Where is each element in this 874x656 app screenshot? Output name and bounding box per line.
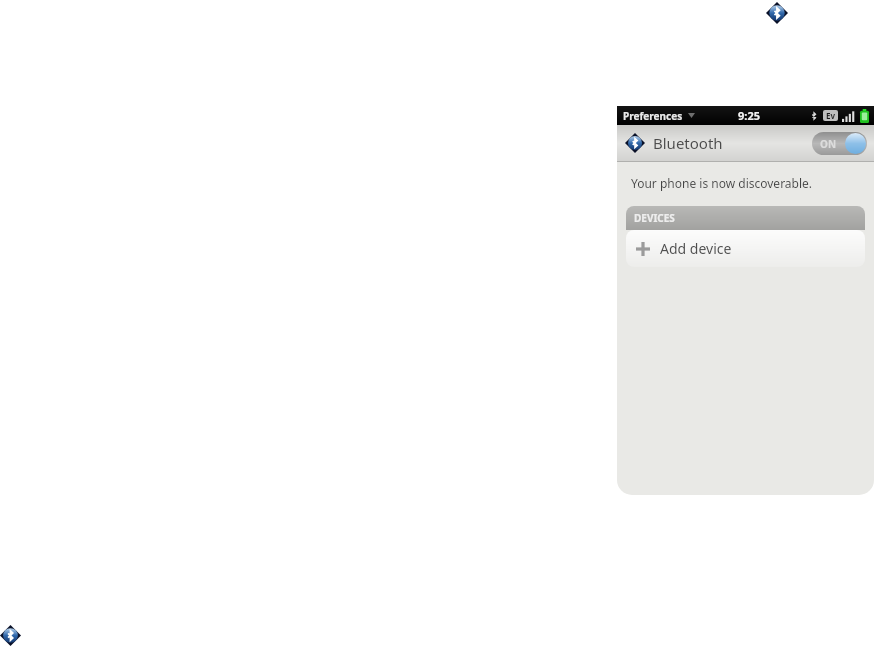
button[interactable]: Add device: [626, 230, 865, 267]
staticText: 9:25: [738, 108, 760, 123]
staticText: Bluetooth: [653, 133, 723, 153]
staticText: Preferences: [623, 109, 683, 123]
staticText: DEVICES: [634, 211, 675, 225]
staticText: ON: [820, 137, 837, 151]
staticText: Ev: [826, 110, 836, 121]
staticText: Add device: [660, 239, 732, 258]
staticText: Your phone is now discoverable.: [631, 175, 813, 191]
button[interactable]: Bluetooth on/off: [812, 132, 867, 155]
